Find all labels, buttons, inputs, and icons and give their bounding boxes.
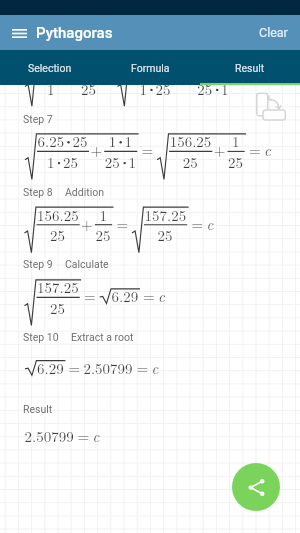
staticText: Step 7 — [23, 113, 53, 125]
staticText: Clear — [259, 25, 288, 40]
button[interactable]: Open navigation menu — [4, 18, 34, 48]
other: Rotate device — [254, 90, 288, 122]
staticText: Step 9 — [23, 258, 53, 270]
button[interactable]: Result — [200, 50, 300, 85]
button[interactable]: Clear — [247, 16, 300, 49]
staticText: Formula — [131, 62, 170, 74]
staticText: Calculate — [65, 258, 109, 270]
staticText: Selection — [28, 62, 72, 74]
staticText: Addition — [65, 186, 105, 198]
button[interactable]: Selection — [0, 50, 100, 85]
button[interactable]: Formula — [100, 50, 200, 85]
button[interactable]: Share — [232, 463, 280, 511]
staticText: Step 8 — [23, 186, 53, 198]
staticText: Result — [235, 62, 265, 74]
staticText: Result — [23, 403, 53, 415]
staticText: Extract a root — [71, 331, 134, 343]
staticText: Pythagoras — [36, 24, 113, 42]
staticText: Step 10 — [23, 331, 59, 343]
